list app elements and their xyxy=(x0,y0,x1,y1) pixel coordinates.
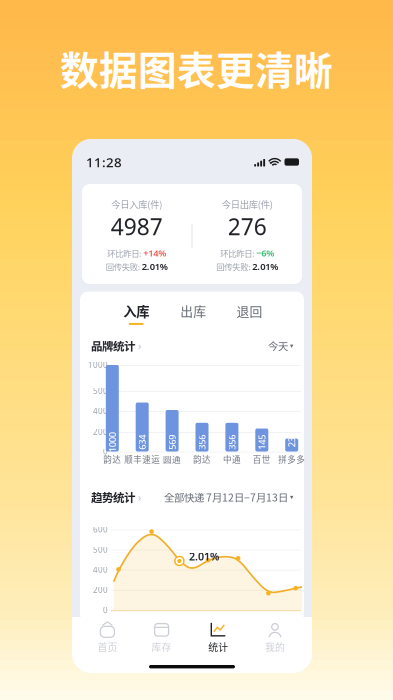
staticText: 2.01% xyxy=(189,549,219,564)
staticText: 入库 xyxy=(123,301,149,320)
staticText: 退回 xyxy=(237,301,263,320)
staticText: 500 xyxy=(93,386,108,396)
staticText: 634 xyxy=(135,436,150,448)
staticText: 回传失败: xyxy=(216,260,250,273)
staticText: 数据图表更清晰 xyxy=(60,40,333,96)
staticText: ▾ xyxy=(290,342,293,349)
staticText: 顺丰速运 xyxy=(124,453,160,465)
staticText: › xyxy=(135,490,141,504)
staticText: 今日出库(件) xyxy=(222,197,273,211)
button[interactable]: 入库 xyxy=(113,299,159,327)
staticText: 今日入库(件) xyxy=(111,197,162,211)
staticText: 环比昨日: xyxy=(107,247,141,259)
staticText: 1000 xyxy=(88,360,108,370)
staticText: −6% xyxy=(256,247,274,259)
staticText: 23 xyxy=(287,436,297,448)
button[interactable]: 我的 xyxy=(248,619,302,657)
button[interactable]: 退回 xyxy=(227,299,273,326)
staticText: 趋势统计 xyxy=(91,489,135,505)
button[interactable]: 库存 xyxy=(135,619,189,657)
staticText: 356 xyxy=(224,436,239,448)
staticText: 11:28 xyxy=(86,153,122,171)
staticText: 200 xyxy=(93,585,108,595)
staticText: 600 xyxy=(93,524,108,535)
staticText: 百世 xyxy=(253,453,271,465)
staticText: 400 xyxy=(93,564,108,575)
staticText: 400 xyxy=(93,406,108,416)
staticText: 569 xyxy=(165,436,180,448)
staticText: 4987 xyxy=(111,211,163,241)
staticText: 中通 xyxy=(223,453,241,465)
staticText: 首页 xyxy=(97,640,117,654)
button[interactable]: 首页 xyxy=(80,619,134,657)
staticText: 276 xyxy=(228,211,267,241)
staticText: 品牌统计 xyxy=(91,337,135,354)
staticText: 韵达 xyxy=(103,453,121,465)
staticText: 环比昨日: xyxy=(220,247,254,259)
staticText: 圆通 xyxy=(163,453,181,465)
staticText: 今天 xyxy=(268,338,288,353)
staticText: 2.01% xyxy=(142,260,168,273)
button[interactable]: 全部快递 7月12日−7月13日 xyxy=(164,489,293,505)
staticText: 韵达 xyxy=(193,453,211,465)
button[interactable]: 今天 xyxy=(268,338,293,353)
button[interactable]: 出库 xyxy=(170,299,216,326)
button[interactable]: 统计 xyxy=(191,619,245,657)
staticText: 145 xyxy=(254,436,269,448)
staticText: 统计 xyxy=(208,640,228,654)
staticText: 0 xyxy=(103,446,108,457)
staticText: 1000 xyxy=(102,436,122,448)
staticText: 拼多多 xyxy=(278,453,305,465)
staticText: 出库 xyxy=(180,301,206,320)
staticText: 200 xyxy=(93,427,108,437)
staticText: 0 xyxy=(103,605,108,615)
staticText: 全部快递 7月12日−7月13日 xyxy=(164,489,288,505)
staticText: › xyxy=(135,338,141,353)
staticText: +14% xyxy=(143,247,166,259)
staticText: 500 xyxy=(93,544,108,555)
staticText: 回传失败: xyxy=(106,260,140,273)
staticText: 356 xyxy=(194,436,209,448)
staticText: 我的 xyxy=(265,640,285,654)
staticText: 库存 xyxy=(152,640,172,654)
staticText: 2.01% xyxy=(252,260,278,273)
staticText: ▾ xyxy=(290,493,293,501)
